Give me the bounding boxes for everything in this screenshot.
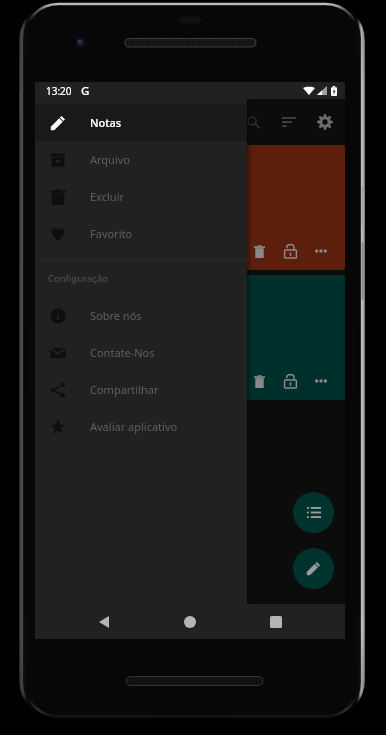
button[interactable]: Notas	[35, 104, 247, 141]
button[interactable]: Lock	[278, 239, 302, 263]
staticText: Excluir	[90, 189, 125, 204]
staticText: 13:20	[46, 84, 72, 98]
staticText: Configuração	[48, 272, 108, 285]
button[interactable]: Search	[235, 104, 271, 140]
button[interactable]: Home	[161, 604, 219, 639]
button[interactable]: Sort	[271, 104, 307, 140]
staticText: Compartilhar	[90, 382, 159, 397]
staticText: Notas	[90, 115, 122, 130]
button[interactable]: Contate-Nos	[35, 334, 247, 371]
staticText: Favorito	[90, 226, 133, 241]
button[interactable]: Avaliar aplicativo	[35, 408, 247, 445]
staticText: Contate-Nos	[90, 345, 155, 360]
button[interactable]: Delete	[37, 275, 345, 400]
button[interactable]: Excluir	[35, 178, 247, 215]
button[interactable]: Sobre nós	[35, 297, 247, 334]
button[interactable]: More options	[309, 239, 333, 263]
button[interactable]: Delete	[247, 239, 271, 263]
button[interactable]: Delete	[37, 145, 345, 270]
staticText: Avaliar aplicativo	[90, 419, 178, 434]
button[interactable]: Settings	[307, 104, 343, 140]
button[interactable]: Compartilhar	[35, 371, 247, 408]
button[interactable]: New note	[293, 548, 334, 589]
button[interactable]: Arquivo	[35, 141, 247, 178]
button[interactable]: New checklist	[293, 492, 334, 533]
staticText: Arquivo	[90, 152, 130, 167]
staticText: Sobre nós	[90, 308, 142, 323]
button[interactable]: Lock	[278, 369, 302, 393]
button[interactable]: Recents	[247, 604, 305, 639]
button[interactable]: Favorito	[35, 215, 247, 252]
staticText: G	[81, 83, 90, 99]
button[interactable]: More options	[309, 369, 333, 393]
button[interactable]: Delete	[247, 369, 271, 393]
button[interactable]: Back	[75, 604, 133, 639]
